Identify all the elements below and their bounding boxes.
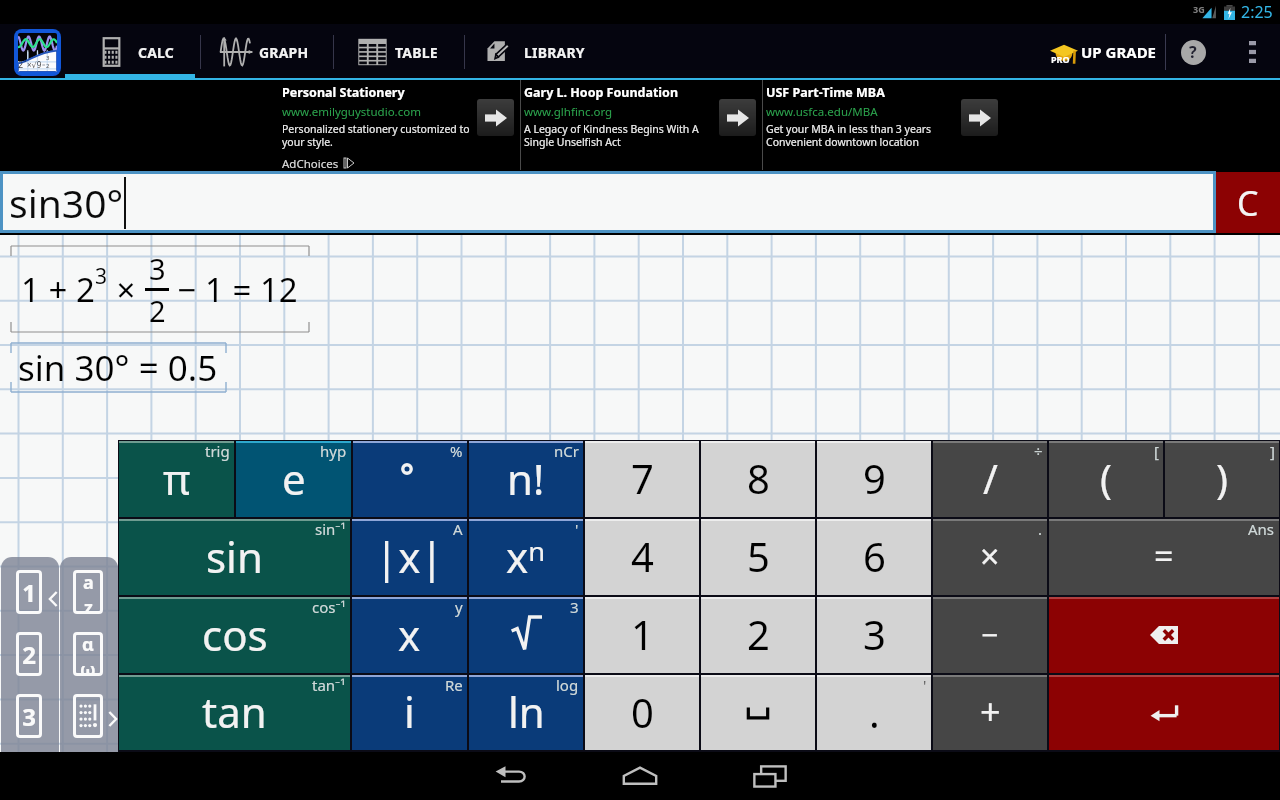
button[interactable]: y (352, 597, 467, 673)
button[interactable]: 5 (701, 519, 815, 595)
staticText: cos⁻¹ (312, 597, 346, 617)
button[interactable]: [ (1049, 441, 1163, 517)
button[interactable]: PRO (1044, 24, 1157, 80)
staticText: trig (205, 441, 230, 461)
button[interactable]: CALC (84, 24, 200, 80)
button[interactable]: Re (352, 675, 467, 750)
staticText: 2 (747, 607, 770, 661)
staticText: nCr (554, 441, 579, 461)
staticText: 1 (22, 576, 36, 609)
button[interactable]: 7 (585, 441, 699, 517)
button[interactable]: nCr (469, 441, 583, 517)
staticText: Gary L. Hoop Foundation (524, 84, 679, 101)
staticText: Personal Stationery (282, 84, 405, 101)
button[interactable]: Open ad (961, 99, 998, 136)
button[interactable]: degree (353, 441, 467, 517)
staticText: xⁿ (506, 528, 546, 585)
staticText: . (869, 685, 880, 739)
staticText: 3 (95, 262, 108, 291)
button[interactable]: 9 (817, 441, 931, 517)
button[interactable]: ] (1165, 441, 1279, 517)
staticText: − (981, 614, 999, 655)
staticText: ×√9 (27, 59, 42, 70)
staticText: [ (1154, 441, 1159, 461)
staticText: 3 (863, 607, 886, 661)
staticText: 3 (149, 249, 166, 288)
staticText: π (163, 450, 191, 507)
staticText: 8 (747, 451, 770, 505)
button[interactable]: log (469, 675, 583, 750)
button[interactable]: sin⁻¹ (119, 519, 350, 595)
staticText: × (108, 267, 145, 312)
button[interactable]: Back (455, 752, 565, 800)
staticText: 3 (570, 597, 579, 617)
button[interactable]: ÷ (933, 441, 1047, 517)
staticText: 2 (46, 62, 50, 70)
button[interactable]: Gary L. Hoop Foundation (521, 80, 762, 170)
staticText: Re (445, 675, 463, 695)
staticText: 2:25 (1241, 1, 1273, 23)
button[interactable]: trig (119, 441, 234, 517)
staticText: n! (507, 450, 545, 507)
button[interactable]: square root (469, 597, 583, 673)
staticText: = (1154, 533, 1174, 579)
staticText: TABLE (395, 43, 438, 62)
button[interactable]: Personal Stationery (279, 80, 520, 170)
button[interactable]: tan⁻¹ (119, 675, 350, 750)
staticText: GRAPH (259, 43, 309, 62)
button[interactable]: 8 (701, 441, 815, 517)
staticText: e (282, 450, 306, 507)
button[interactable]: LIBRARY (465, 24, 603, 80)
button[interactable]: Ans (1049, 519, 1279, 595)
staticText: Ans (1248, 519, 1275, 539)
button[interactable]: sin30° (3, 174, 1213, 230)
button[interactable]: − (933, 597, 1047, 673)
staticText: 6 (863, 529, 886, 583)
button[interactable]: Home (585, 752, 695, 800)
button[interactable]: 1 (585, 597, 699, 673)
staticText: www.emilyguystudio.com (282, 104, 421, 120)
button[interactable]: hyp (236, 441, 351, 517)
staticText: sin 30° = 0.5 (18, 344, 218, 392)
button[interactable]: More options (1237, 37, 1267, 67)
staticText: C (1237, 180, 1259, 226)
button[interactable]: cos⁻¹ (119, 597, 350, 673)
staticText: ÷ (1034, 441, 1043, 461)
button[interactable]: ' (469, 519, 583, 595)
staticText: ? (1189, 41, 1197, 63)
button[interactable]: Open ad (477, 99, 514, 136)
button[interactable]: TABLE (334, 24, 464, 80)
staticText: 0 (631, 685, 654, 739)
button[interactable]: . (933, 519, 1047, 595)
button[interactable]: backspace (1049, 597, 1279, 673)
button[interactable]: Open ad (719, 99, 756, 136)
button[interactable]: 4 (585, 519, 699, 595)
button[interactable]: Help (1176, 35, 1210, 69)
staticText: α (82, 632, 94, 657)
staticText: AdChoices (282, 156, 339, 170)
button[interactable]: 0 (585, 675, 699, 750)
button[interactable]: Graphing calculator (14, 29, 61, 76)
button[interactable]: 2 (701, 597, 815, 673)
staticText: 2 (18, 58, 24, 70)
button[interactable]: Keyboard selector (60, 557, 118, 800)
button[interactable]: USF Part-Time MBA (763, 80, 1005, 170)
button[interactable]: space (701, 675, 815, 750)
button[interactable]: Recent apps (715, 752, 825, 800)
button[interactable]: enter (1049, 675, 1279, 750)
staticText: 3 (46, 54, 50, 62)
button[interactable]: GRAPH (201, 24, 333, 80)
button[interactable]: C (1216, 172, 1280, 233)
button[interactable]: 6 (817, 519, 931, 595)
staticText: PRO (1051, 53, 1070, 65)
staticText: ) (1216, 451, 1228, 505)
button[interactable]: + (933, 675, 1047, 750)
staticText: A (453, 519, 463, 539)
button[interactable]: 3 (817, 597, 931, 673)
button[interactable]: ' (817, 675, 931, 750)
staticText: % (450, 441, 463, 461)
staticText: www.glhfinc.org (524, 104, 613, 120)
staticText: A Legacy of Kindness Begins With A Singl… (524, 122, 699, 149)
button[interactable]: A (352, 519, 467, 595)
button[interactable]: Page selector (1, 557, 59, 800)
